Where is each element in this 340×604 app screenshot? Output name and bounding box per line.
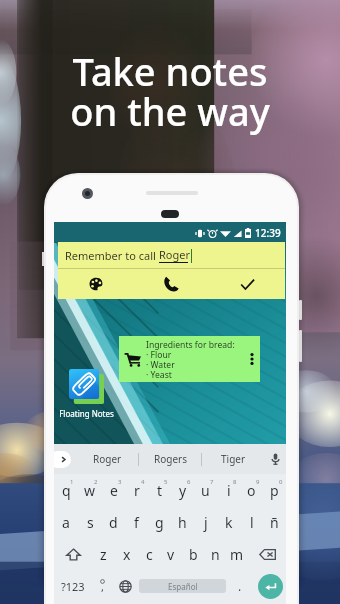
button[interactable]: Call: [133, 269, 209, 299]
staticText: g: [155, 513, 164, 532]
staticText: u: [201, 481, 210, 500]
staticText: r: [134, 481, 140, 500]
staticText: y: [179, 481, 187, 500]
button[interactable]: w: [78, 474, 102, 506]
button[interactable]: u: [194, 474, 217, 506]
button[interactable]: c: [138, 538, 160, 570]
button[interactable]: Roger: [76, 444, 138, 474]
staticText: d: [109, 513, 118, 532]
button[interactable]: Tiger: [202, 444, 264, 474]
staticText: p: [270, 481, 279, 500]
staticText: z: [100, 545, 107, 564]
staticText: q: [62, 481, 71, 500]
staticText: e: [110, 481, 118, 500]
button[interactable]: More options: [243, 336, 260, 382]
button[interactable]: Voice input: [264, 444, 286, 474]
button[interactable]: ñ: [263, 506, 286, 538]
staticText: x: [123, 545, 131, 564]
staticText: 4: [141, 478, 145, 486]
staticText: m: [230, 545, 244, 564]
staticText: i: [227, 481, 231, 500]
staticText: 5: [164, 478, 168, 486]
staticText: Roger: [93, 452, 122, 466]
staticText: 3: [118, 478, 122, 486]
button[interactable]: Floating Notes app: [54, 369, 120, 419]
button[interactable]: .: [226, 570, 254, 602]
staticText: v: [167, 545, 175, 564]
button[interactable]: ?123: [54, 570, 92, 602]
button[interactable]: g: [148, 506, 171, 538]
staticText: 2: [94, 478, 98, 486]
button[interactable]: m: [226, 538, 248, 570]
staticText: 7: [210, 478, 214, 486]
staticText: 9: [256, 478, 260, 486]
button[interactable]: Done: [209, 269, 285, 299]
button[interactable]: ,: [92, 570, 112, 602]
button[interactable]: Backspace: [248, 538, 286, 570]
button[interactable]: z: [92, 538, 115, 570]
staticText: c: [146, 545, 153, 564]
button[interactable]: k: [217, 506, 240, 538]
button[interactable]: Change language: [112, 570, 139, 602]
staticText: 8: [233, 478, 237, 486]
staticText: k: [225, 513, 233, 532]
staticText: Take notes on the way: [70, 45, 270, 137]
staticText: .: [238, 578, 242, 594]
staticText: f: [134, 513, 139, 532]
staticText: n: [211, 545, 220, 564]
button[interactable]: p: [263, 474, 286, 506]
button[interactable]: d: [102, 506, 125, 538]
staticText: s: [87, 513, 94, 532]
staticText: a: [62, 513, 70, 532]
staticText: b: [189, 545, 198, 564]
button[interactable]: x: [115, 538, 138, 570]
button[interactable]: r: [125, 474, 148, 506]
staticText: Tiger: [221, 452, 246, 466]
button[interactable]: f: [125, 506, 148, 538]
button[interactable]: i: [217, 474, 240, 506]
button[interactable]: t: [148, 474, 171, 506]
staticText: 0: [279, 478, 283, 486]
staticText: Español: [168, 581, 198, 592]
button[interactable]: b: [182, 538, 204, 570]
button[interactable]: o: [240, 474, 263, 506]
staticText: t: [157, 481, 163, 500]
button[interactable]: h: [171, 506, 194, 538]
staticText: Ingredients for bread: · Flour · Water ·…: [146, 339, 243, 380]
button[interactable]: l: [240, 506, 263, 538]
button[interactable]: j: [194, 506, 217, 538]
staticText: Remember to call: [65, 248, 159, 263]
staticText: ñ: [270, 513, 279, 532]
button[interactable]: q: [54, 474, 78, 506]
staticText: ,: [101, 579, 104, 593]
button[interactable]: n: [204, 538, 226, 570]
button[interactable]: Enter: [258, 574, 283, 599]
staticText: Roger: [159, 247, 191, 262]
button[interactable]: v: [160, 538, 182, 570]
staticText: Rogers: [154, 452, 187, 466]
button[interactable]: Rogers: [139, 444, 201, 474]
staticText: 12:39: [255, 226, 281, 240]
staticText: ?123: [61, 579, 85, 594]
button[interactable]: Expand suggestions: [54, 444, 76, 474]
button[interactable]: e: [102, 474, 125, 506]
staticText: o: [247, 481, 256, 500]
button[interactable]: Shift: [54, 538, 92, 570]
staticText: l: [250, 513, 254, 532]
button[interactable]: Español: [139, 579, 226, 593]
staticText: w: [84, 481, 96, 500]
staticText: Floating Notes: [59, 408, 114, 419]
button[interactable]: a: [54, 506, 78, 538]
button[interactable]: s: [78, 506, 102, 538]
staticText: 1: [70, 478, 74, 486]
button[interactable]: Change colour: [58, 269, 133, 299]
staticText: 6: [187, 478, 191, 486]
staticText: j: [204, 513, 208, 532]
button[interactable]: y: [171, 474, 194, 506]
staticText: h: [178, 513, 187, 532]
